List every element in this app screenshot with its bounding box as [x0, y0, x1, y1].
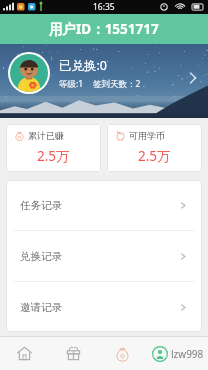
staticText: 已兑换:0 [59, 57, 108, 74]
button[interactable]: 可用学币 [107, 124, 202, 172]
staticText: 用户ID：1551717 [49, 20, 159, 38]
button[interactable]: Earnings [98, 337, 147, 370]
staticText: 2.5万 [37, 147, 70, 165]
staticText: 可用学币 [129, 130, 165, 141]
button[interactable]: lzw998 [147, 337, 208, 370]
button[interactable]: 邀请记录 [6, 282, 202, 332]
button[interactable]: Gifts [49, 337, 98, 370]
staticText: 2.5万 [138, 147, 171, 165]
staticText: 邀请记录 [20, 301, 62, 314]
staticText: 任务记录 [20, 199, 62, 212]
staticText: 等级:1 [59, 78, 84, 90]
button[interactable]: 兑换记录 [6, 231, 202, 281]
staticText: 签到天数：2 [93, 78, 141, 90]
button[interactable]: Home [0, 337, 49, 370]
staticText: 兑换记录 [20, 250, 62, 263]
button[interactable]: Profile avatar [10, 54, 48, 92]
button[interactable]: Profile avatar [0, 44, 208, 118]
button[interactable]: 累计已赚 [6, 124, 101, 172]
button[interactable]: 任务记录 [6, 180, 202, 230]
staticText: 16:35 [93, 1, 115, 13]
staticText: lzw998 [171, 347, 204, 361]
staticText: 累计已赚 [28, 130, 64, 141]
